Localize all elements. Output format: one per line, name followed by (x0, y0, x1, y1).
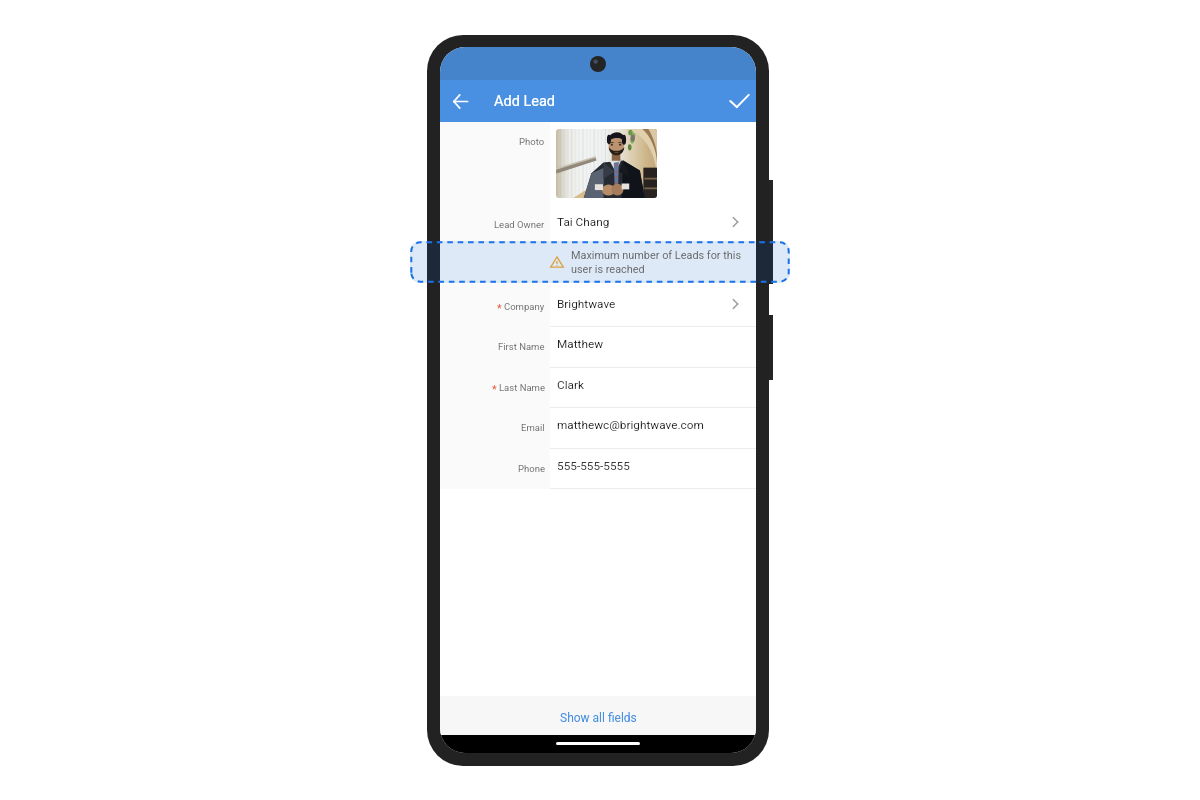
button[interactable]: Save (722, 80, 756, 122)
button[interactable]: * (440, 287, 756, 327)
staticText: Lead Owner (494, 219, 545, 230)
staticText: Email (521, 422, 545, 433)
staticText: Last Name (499, 382, 545, 393)
staticText: * (497, 302, 502, 315)
staticText: Clark (557, 378, 584, 392)
staticText: Company (504, 301, 545, 312)
staticText: Maximum number of Leads for this user is… (571, 249, 747, 276)
button[interactable]: * (440, 368, 756, 408)
staticText: Brightwave (557, 297, 616, 311)
staticText: Show all fields (560, 711, 637, 725)
button[interactable]: Lead Owner (440, 205, 756, 246)
staticText: Add Lead (494, 93, 555, 110)
staticText: Tai Chang (557, 215, 610, 229)
staticText: Matthew (557, 337, 604, 351)
staticText: First Name (498, 341, 545, 352)
staticText: Phone (518, 463, 545, 474)
button[interactable]: Photo (440, 122, 756, 205)
button[interactable]: Phone (440, 449, 756, 489)
button[interactable]: Show all fields (440, 696, 756, 735)
button[interactable]: First Name (440, 327, 756, 368)
button[interactable]: Back (440, 80, 480, 122)
staticText: matthewc@brightwave.com (557, 418, 704, 432)
staticText: Photo (519, 136, 545, 147)
staticText: * (492, 383, 497, 396)
button[interactable]: Email (440, 408, 756, 449)
staticText: 555-555-5555 (557, 459, 630, 473)
